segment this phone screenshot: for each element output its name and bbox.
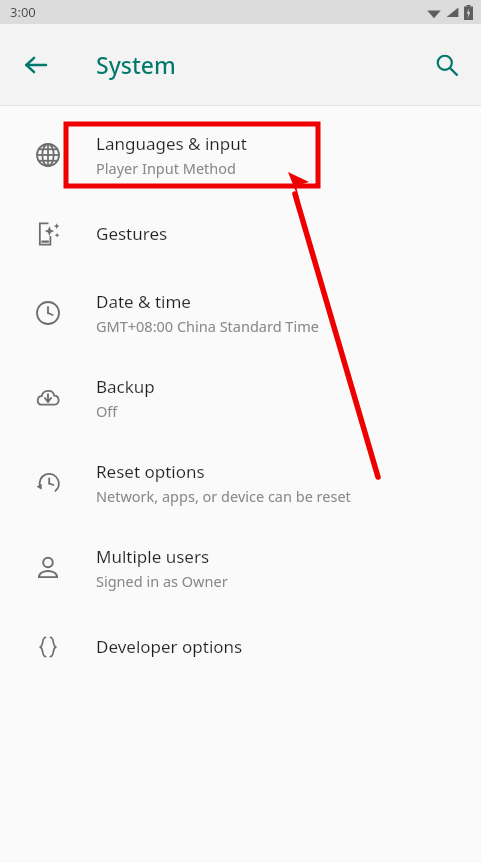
- staticText: Date & time: [96, 290, 191, 313]
- staticText: Reset options: [96, 460, 205, 483]
- button[interactable]: Reset options: [0, 440, 481, 525]
- staticText: Off: [96, 401, 118, 421]
- staticText: GMT+08:00 China Standard Time: [96, 316, 319, 336]
- button[interactable]: Backup: [0, 355, 481, 440]
- staticText: 3:00: [10, 3, 36, 21]
- button[interactable]: Search: [423, 41, 471, 89]
- staticText: Backup: [96, 375, 155, 398]
- staticText: Languages & input: [96, 132, 247, 155]
- staticText: Signed in as Owner: [96, 571, 228, 591]
- button[interactable]: Developer options: [0, 610, 481, 683]
- button[interactable]: Gestures: [0, 197, 481, 270]
- staticText: Network, apps, or device can be reset: [96, 486, 351, 506]
- staticText: Developer options: [96, 635, 243, 658]
- button[interactable]: Date & time: [0, 270, 481, 355]
- staticText: Gestures: [96, 222, 168, 245]
- staticText: Player Input Method: [96, 158, 236, 178]
- staticText: Multiple users: [96, 545, 210, 568]
- staticText: System: [96, 49, 176, 80]
- button[interactable]: Back: [12, 41, 60, 89]
- button[interactable]: Multiple users: [0, 525, 481, 610]
- button[interactable]: Languages & input: [0, 112, 481, 197]
